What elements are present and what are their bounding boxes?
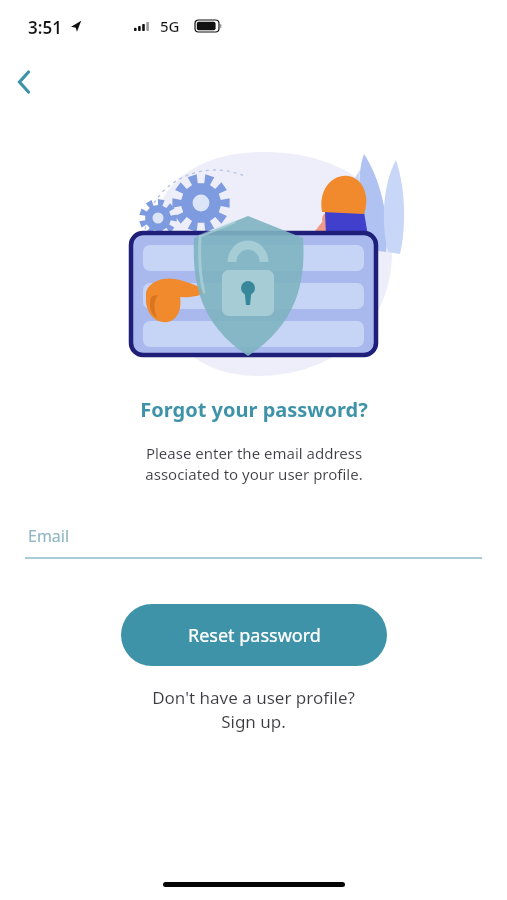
staticText: Don't have a user profile? Sign up.: [152, 686, 355, 733]
staticText: 5G: [160, 16, 180, 36]
button[interactable]: Don't have a user profile? Sign up.: [152, 686, 355, 733]
button[interactable]: Back: [6, 62, 46, 102]
staticText: Forgot your password?: [140, 396, 368, 423]
button[interactable]: Reset password: [121, 604, 387, 666]
staticText: Please enter the email address associate…: [145, 443, 363, 485]
staticText: Email: [28, 525, 70, 547]
staticText: 3:51: [28, 16, 62, 39]
button[interactable]: Email: [25, 525, 482, 559]
staticText: Reset password: [188, 623, 321, 648]
